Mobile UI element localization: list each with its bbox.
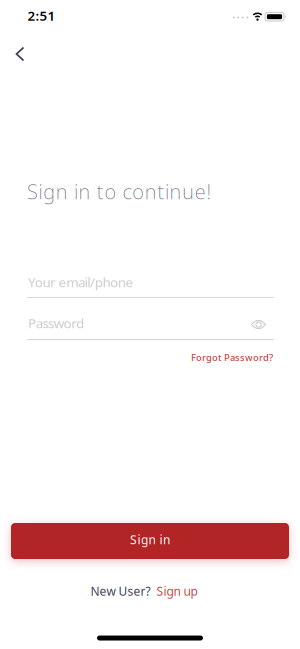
staticText: New User? — [90, 583, 150, 599]
button[interactable]: Back — [5, 39, 35, 69]
button[interactable]: Show password — [250, 317, 267, 329]
button[interactable]: Sign in — [11, 523, 289, 559]
staticText: Password — [28, 314, 84, 332]
staticText: 2:51 — [27, 7, 55, 24]
staticText: Your email/phone — [28, 273, 133, 291]
staticText: Sign in — [130, 531, 170, 547]
button[interactable]: Forgot Password? — [191, 351, 273, 364]
button[interactable]: Sign up — [156, 583, 197, 599]
staticText: Forgot Password? — [191, 351, 273, 364]
staticText: Sign in to continue! — [27, 178, 211, 205]
staticText: Sign up — [156, 583, 197, 599]
